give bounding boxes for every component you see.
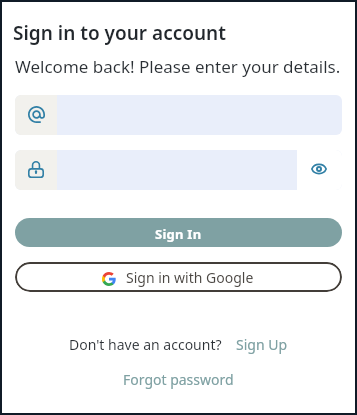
button[interactable]: Show password xyxy=(15,150,342,190)
staticText: Welcome back! Please enter your details. xyxy=(15,55,341,78)
staticText: Sign in to your account xyxy=(13,20,226,46)
button[interactable]: Sign Up xyxy=(236,335,288,354)
staticText: Don't have an account? xyxy=(69,335,222,354)
button[interactable]: Forgot password xyxy=(123,370,234,389)
button[interactable]: Sign in with Google xyxy=(15,262,342,292)
button[interactable] xyxy=(15,95,342,135)
staticText: Sign In xyxy=(155,225,202,243)
button[interactable]: Show password xyxy=(297,150,342,190)
button[interactable]: Sign In xyxy=(15,218,342,247)
staticText: Sign in with Google xyxy=(126,268,254,287)
